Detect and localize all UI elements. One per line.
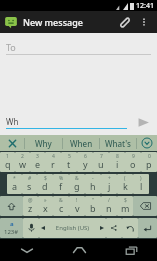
staticText: n — [106, 202, 112, 214]
button[interactable]: @ — [23, 196, 38, 216]
staticText: y — [83, 158, 88, 170]
button[interactable]: ) — [133, 174, 149, 194]
staticText: l — [140, 180, 143, 192]
button[interactable]: More options — [135, 13, 153, 31]
staticText: New message — [23, 16, 113, 28]
button[interactable]: $ — [37, 174, 53, 194]
staticText: " — [92, 197, 95, 204]
staticText: f — [59, 180, 63, 192]
button[interactable]: - — [85, 174, 101, 194]
staticText: 9 — [132, 153, 135, 160]
staticText: # — [28, 175, 32, 182]
staticText: 1 — [6, 153, 9, 160]
staticText: ( — [124, 175, 126, 182]
button[interactable]: Delete — [133, 196, 157, 216]
button[interactable]: Enter — [138, 218, 157, 238]
button[interactable]: 2 — [15, 152, 30, 172]
button[interactable]: 3 — [30, 152, 45, 172]
button[interactable]: English (US) — [39, 218, 106, 238]
staticText: * — [13, 175, 16, 182]
staticText: / — [108, 197, 110, 204]
staticText: j — [108, 180, 111, 192]
button[interactable]: 0 — [141, 152, 157, 172]
button[interactable]: What's — [100, 135, 136, 151]
button[interactable]: / — [101, 196, 117, 216]
button[interactable]: Home — [53, 239, 105, 261]
staticText: To — [6, 41, 16, 53]
staticText: » — [44, 197, 47, 204]
button[interactable]: 1 — [0, 152, 15, 172]
button[interactable]: Emoji — [106, 218, 122, 238]
staticText: h — [90, 180, 96, 192]
staticText: Wh — [6, 116, 19, 127]
staticText: 7 — [100, 153, 103, 160]
button[interactable]: & — [53, 196, 69, 216]
button[interactable]: More suggestions — [137, 135, 157, 151]
staticText: When — [70, 138, 93, 149]
staticText: English (US) — [45, 224, 100, 232]
staticText: d — [42, 180, 48, 192]
staticText: e — [35, 158, 41, 170]
button[interactable]: To — [6, 39, 151, 54]
button[interactable]: Attach — [113, 11, 135, 33]
staticText: 3 — [36, 153, 39, 160]
staticText: v — [75, 202, 80, 214]
button[interactable]: Shift — [0, 196, 23, 216]
staticText: q — [5, 158, 11, 170]
staticText: What's — [105, 138, 131, 149]
staticText: & — [59, 197, 63, 204]
button[interactable]: Recent apps — [105, 239, 157, 261]
button[interactable]: & — [69, 174, 85, 194]
staticText: @ — [28, 197, 33, 204]
staticText: a — [12, 180, 18, 192]
staticText: Why — [35, 138, 52, 149]
staticText: u — [98, 158, 104, 170]
button[interactable]: ( — [117, 174, 133, 194]
staticText: i — [116, 158, 119, 170]
button[interactable]: 9 — [125, 152, 141, 172]
button[interactable]: Back — [0, 239, 53, 261]
staticText: & — [75, 175, 79, 182]
staticText: w — [19, 158, 27, 170]
staticText: o — [130, 158, 136, 170]
button[interactable]: 4 — [45, 152, 61, 172]
button[interactable]: % — [53, 174, 69, 194]
button[interactable]: Dismiss suggestions — [0, 135, 24, 151]
button[interactable]: $ — [117, 196, 133, 216]
button[interactable]: Voice input — [23, 218, 39, 238]
button[interactable]: 7 — [93, 152, 109, 172]
staticText: ! — [76, 197, 78, 204]
button[interactable]: 8 — [109, 152, 125, 172]
staticText: $ — [124, 197, 127, 204]
staticText: k — [123, 180, 128, 192]
staticText: 2 — [21, 153, 24, 160]
button[interactable]: # — [22, 174, 37, 194]
button[interactable]: Why — [25, 135, 62, 151]
button[interactable]: » — [38, 196, 53, 216]
button[interactable]: a — [0, 218, 23, 238]
staticText: a — [10, 220, 14, 228]
staticText: - — [92, 175, 94, 182]
staticText: 6 — [84, 153, 87, 160]
button[interactable]: ! — [69, 196, 85, 216]
button[interactable]: " — [85, 196, 101, 216]
staticText: 8 — [116, 153, 119, 160]
staticText: 0 — [148, 153, 151, 160]
button[interactable]: Undo — [122, 218, 138, 238]
button[interactable]: When — [63, 135, 99, 151]
button[interactable]: 5 — [61, 152, 77, 172]
staticText: ) — [140, 175, 142, 182]
staticText: m — [121, 202, 130, 214]
staticText: p — [146, 158, 152, 170]
staticText: g — [74, 180, 80, 192]
button[interactable]: Send — [133, 112, 153, 132]
button[interactable]: + — [101, 174, 117, 194]
staticText: + — [108, 175, 111, 182]
staticText: b — [90, 202, 96, 214]
button[interactable]: Wh — [6, 115, 127, 128]
button[interactable]: 6 — [77, 152, 93, 172]
staticText: 123# — [4, 228, 19, 236]
button[interactable]: * — [7, 174, 22, 194]
staticText: % — [59, 175, 64, 182]
staticText: $ — [44, 175, 47, 182]
